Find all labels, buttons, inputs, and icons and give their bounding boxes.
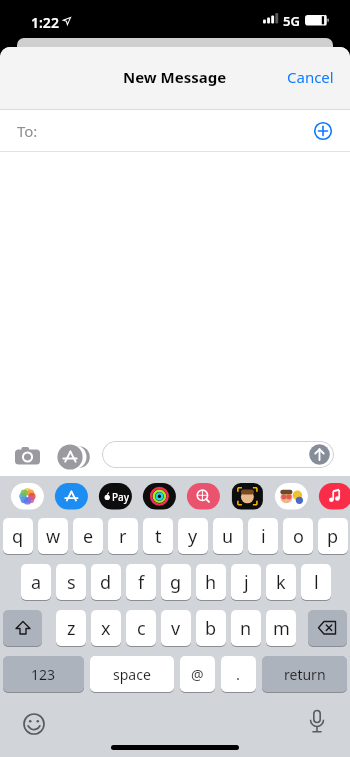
staticText: 1:22 — [31, 13, 59, 32]
staticText: return — [284, 665, 326, 684]
button[interactable]: u — [213, 518, 243, 554]
button[interactable]: x — [91, 610, 121, 646]
staticText: To: — [17, 121, 38, 141]
button[interactable]: 123 — [3, 656, 84, 692]
button[interactable]: . — [221, 656, 256, 692]
button[interactable]: q — [3, 518, 33, 554]
staticText: w — [46, 524, 61, 549]
button[interactable]: w — [38, 518, 68, 554]
button[interactable]: l — [301, 564, 331, 600]
staticText: 5G — [283, 12, 300, 30]
button[interactable]: e — [73, 518, 103, 554]
button[interactable] — [57, 444, 95, 470]
button[interactable]: k — [266, 564, 296, 600]
button[interactable]: o — [283, 518, 313, 554]
staticText: d — [100, 570, 112, 595]
button[interactable]: v — [161, 610, 191, 646]
button[interactable]: t — [143, 518, 173, 554]
staticText: r — [119, 524, 127, 549]
button[interactable]: y — [178, 518, 208, 554]
button[interactable]: return — [262, 656, 347, 692]
staticText: o — [293, 524, 304, 549]
button[interactable]: z — [56, 610, 86, 646]
button[interactable] — [3, 610, 42, 646]
button[interactable]: Cancel — [287, 67, 334, 87]
staticText: . — [236, 664, 241, 684]
staticText: n — [240, 616, 252, 641]
staticText: g — [170, 570, 182, 595]
button[interactable]: j — [231, 564, 261, 600]
button[interactable]: h — [196, 564, 226, 600]
button[interactable]: i — [248, 518, 278, 554]
button[interactable]: b — [196, 610, 226, 646]
button[interactable] — [308, 610, 347, 646]
staticText: New Message — [123, 67, 227, 87]
staticText: s — [67, 570, 76, 595]
button[interactable]: s — [56, 564, 86, 600]
staticText: 123 — [31, 665, 56, 684]
button[interactable]: c — [126, 610, 156, 646]
staticText: z — [67, 616, 76, 641]
button[interactable] — [308, 710, 326, 736]
button[interactable]: r — [108, 518, 138, 554]
button[interactable]: @ — [180, 656, 215, 692]
button[interactable]: d — [91, 564, 121, 600]
button[interactable] — [15, 447, 41, 465]
button[interactable]: a — [21, 564, 51, 600]
button[interactable]: space — [90, 656, 174, 692]
button[interactable] — [0, 476, 350, 518]
staticText: v — [171, 616, 181, 641]
button[interactable]: m — [266, 610, 296, 646]
button[interactable]: g — [161, 564, 191, 600]
staticText: space — [113, 665, 151, 684]
staticText: Cancel — [287, 67, 334, 87]
staticText: t — [155, 524, 162, 549]
staticText: x — [101, 616, 111, 641]
staticText: m — [273, 616, 290, 641]
staticText: y — [188, 524, 198, 549]
staticText: b — [205, 616, 217, 641]
staticText: j — [244, 570, 249, 595]
staticText: e — [83, 524, 94, 549]
button[interactable]: p — [318, 518, 348, 554]
button[interactable]: To: — [0, 110, 350, 152]
staticText: l — [314, 570, 319, 595]
button[interactable]: f — [126, 564, 156, 600]
button[interactable] — [23, 713, 45, 735]
staticText: f — [138, 570, 145, 595]
staticText: c — [137, 616, 146, 641]
button[interactable] — [102, 441, 334, 468]
staticText: u — [222, 524, 234, 549]
staticText: h — [205, 570, 217, 595]
staticText: a — [31, 570, 42, 595]
staticText: i — [261, 524, 266, 549]
staticText: q — [12, 524, 24, 549]
staticText: Pay — [112, 490, 130, 504]
staticText: p — [327, 524, 339, 549]
staticText: k — [276, 570, 286, 595]
button[interactable]: n — [231, 610, 261, 646]
staticText: @ — [191, 665, 204, 684]
